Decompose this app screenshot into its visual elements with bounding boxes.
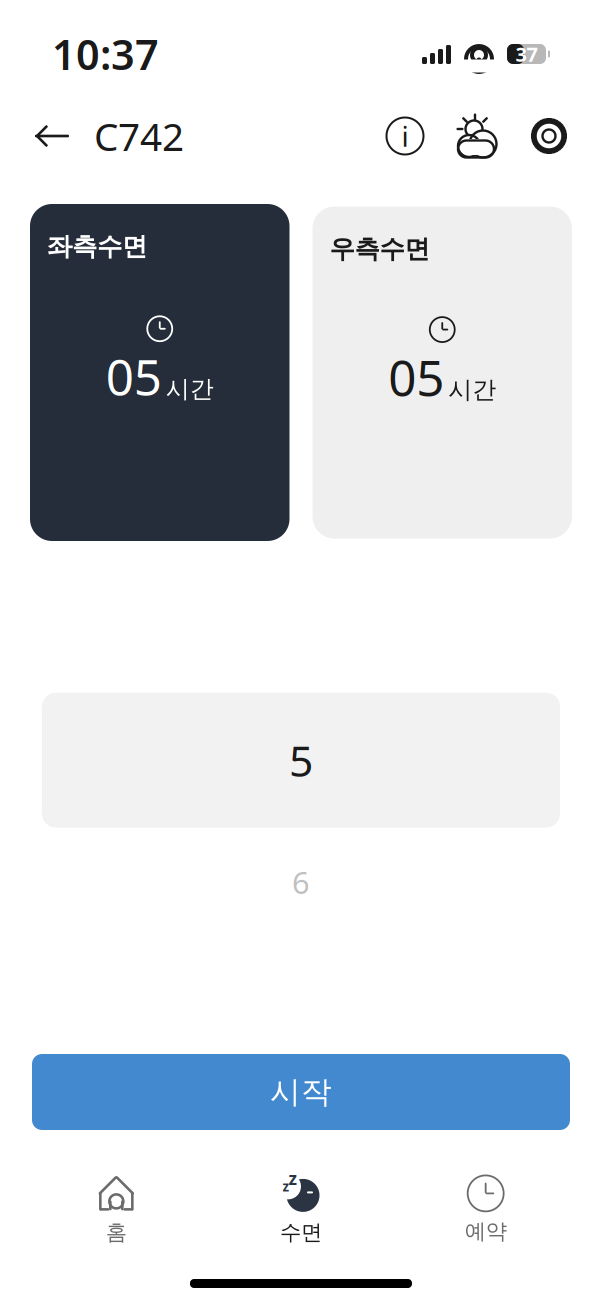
staticText: 홈 <box>106 1219 127 1246</box>
button[interactable]: Settings <box>522 109 576 163</box>
button[interactable]: Weather <box>448 109 506 163</box>
staticText: 5 <box>289 732 313 788</box>
button[interactable]: 홈 <box>24 1174 209 1246</box>
staticText: 좌측수면 <box>47 231 147 262</box>
staticText: 37 <box>515 41 537 67</box>
staticText: 시간 <box>448 375 496 405</box>
staticText: 우측수면 <box>329 233 429 265</box>
staticText: 05 <box>106 343 162 409</box>
button[interactable]: 예약 <box>393 1175 578 1245</box>
button[interactable]: Information <box>378 109 432 163</box>
button[interactable]: Back <box>26 110 78 162</box>
button[interactable]: z <box>209 1174 393 1246</box>
staticText: C742 <box>94 110 184 162</box>
staticText: 시간 <box>166 374 214 404</box>
staticText: 수면 <box>280 1219 322 1246</box>
staticText: z <box>282 1177 289 1195</box>
staticText: 6 <box>292 862 310 902</box>
staticText: 예약 <box>465 1218 507 1245</box>
staticText: z <box>288 1167 297 1190</box>
staticText: 05 <box>388 344 444 410</box>
button[interactable]: 시작 <box>32 1054 570 1130</box>
staticText: i <box>401 117 408 155</box>
button[interactable]: 우측수면 <box>312 206 572 538</box>
staticText: 10:37 <box>52 27 159 81</box>
staticText: 시작 <box>270 1073 332 1111</box>
button[interactable]: 좌측수면 <box>30 204 289 541</box>
